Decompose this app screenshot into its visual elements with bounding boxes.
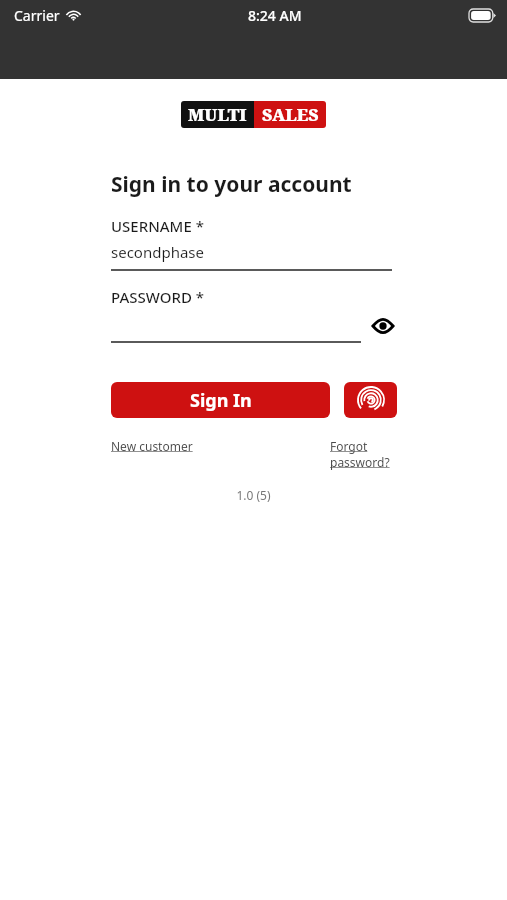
button[interactable]: Sign In	[111, 382, 330, 418]
staticText: 8:24 AM	[248, 6, 302, 25]
staticText: SALES	[262, 103, 319, 126]
button[interactable]: Sign in with fingerprint	[344, 382, 397, 418]
staticText: New customer	[111, 438, 193, 454]
button[interactable]: Show password	[370, 313, 396, 339]
staticText: 1.0 (5)	[0, 487, 507, 503]
staticText: Sign in to your account	[111, 170, 352, 199]
staticText: USERNAME *	[111, 216, 204, 236]
staticText: Forgot password?	[330, 438, 396, 470]
staticText: MULTI	[188, 103, 247, 126]
staticText: Sign In	[190, 388, 252, 413]
staticText: secondphase	[111, 242, 204, 262]
staticText: PASSWORD *	[111, 287, 205, 307]
button[interactable]: New customer	[111, 438, 193, 454]
staticText: Carrier	[14, 6, 60, 25]
button[interactable]: Forgot password?	[330, 438, 396, 470]
